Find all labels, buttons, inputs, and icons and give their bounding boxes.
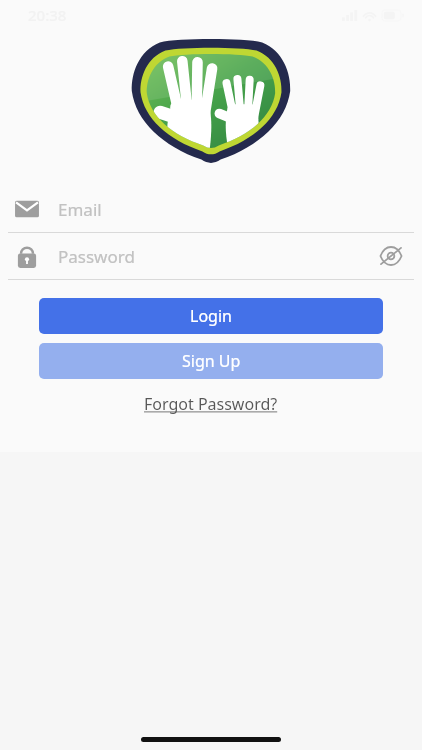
button[interactable]: Show password — [374, 239, 408, 273]
staticText: Forgot Password? — [144, 393, 278, 415]
other: Email — [14, 196, 40, 222]
staticText: Email — [58, 198, 102, 221]
button[interactable]: Login — [39, 298, 383, 334]
button[interactable]: Password — [0, 233, 422, 279]
staticText: Sign Up — [182, 350, 241, 372]
other: Password — [14, 243, 40, 269]
button[interactable]: Sign Up — [39, 343, 383, 379]
staticText: Login — [190, 305, 232, 327]
button[interactable]: Forgot Password? — [134, 389, 288, 419]
button[interactable]: Email — [0, 186, 422, 232]
staticText: Password — [58, 245, 135, 268]
